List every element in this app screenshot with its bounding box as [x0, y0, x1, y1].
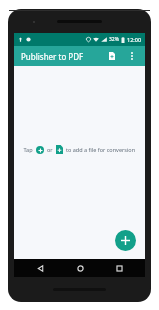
staticText: Publisher to PDF: [21, 51, 84, 62]
button[interactable]: Recent apps: [105, 259, 133, 277]
button[interactable]: More options: [122, 46, 142, 66]
button[interactable]: Add: [36, 146, 44, 154]
button[interactable]: Add file: [102, 46, 122, 66]
staticText: to add a file for conversion: [66, 146, 136, 153]
button[interactable]: Add file: [115, 230, 136, 251]
button[interactable]: Back: [26, 259, 54, 277]
button[interactable]: Add file: [56, 145, 63, 154]
staticText: 12:00: [127, 36, 142, 43]
staticText: 32%: [109, 36, 119, 43]
staticText: or: [47, 146, 53, 153]
staticText: Tap: [23, 146, 33, 153]
button[interactable]: Home: [66, 259, 94, 277]
